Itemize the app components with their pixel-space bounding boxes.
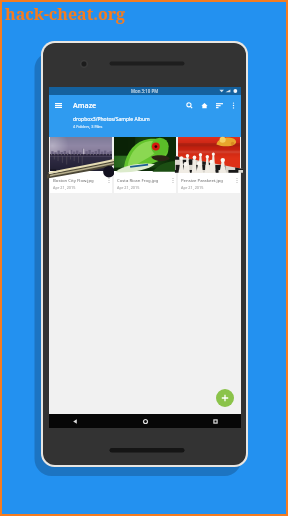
button[interactable]: More options — [169, 171, 176, 189]
button[interactable]: Boston City Flow.jpg — [50, 137, 112, 193]
button[interactable]: More options — [227, 99, 240, 112]
staticText: hack-cheat.org — [5, 3, 126, 25]
button[interactable]: Pensive Parakeet.jpg — [178, 137, 240, 193]
staticText: Apr 21, 2015 — [181, 185, 204, 190]
staticText: Apr 21, 2015 — [53, 185, 76, 190]
staticText: Apr 21, 2015 — [117, 185, 140, 190]
button[interactable]: Home — [198, 99, 211, 112]
staticText: Amaze — [73, 100, 97, 110]
staticText: Mon 3:10 PM — [131, 88, 159, 94]
button[interactable]: Sort — [213, 99, 226, 112]
button[interactable]: Recents — [208, 414, 222, 428]
staticText: Pensive Parakeet.jpg — [181, 177, 223, 183]
button[interactable]: Search — [183, 99, 196, 112]
button[interactable]: More options — [233, 171, 240, 189]
button[interactable]: Add — [216, 389, 234, 407]
button[interactable]: More options — [105, 171, 112, 189]
button[interactable]: Home — [138, 414, 152, 428]
button[interactable]: Menu — [52, 99, 64, 111]
button[interactable]: Back — [68, 414, 82, 428]
staticText: 4 Folders, 3 Files — [73, 124, 103, 129]
staticText: dropbox3/Photos/Sample Album — [73, 116, 150, 123]
staticText: Boston City Flow.jpg — [53, 177, 94, 183]
staticText: Costa Rican Frog.jpg — [117, 177, 159, 183]
button[interactable]: Costa Rican Frog.jpg — [114, 137, 176, 193]
